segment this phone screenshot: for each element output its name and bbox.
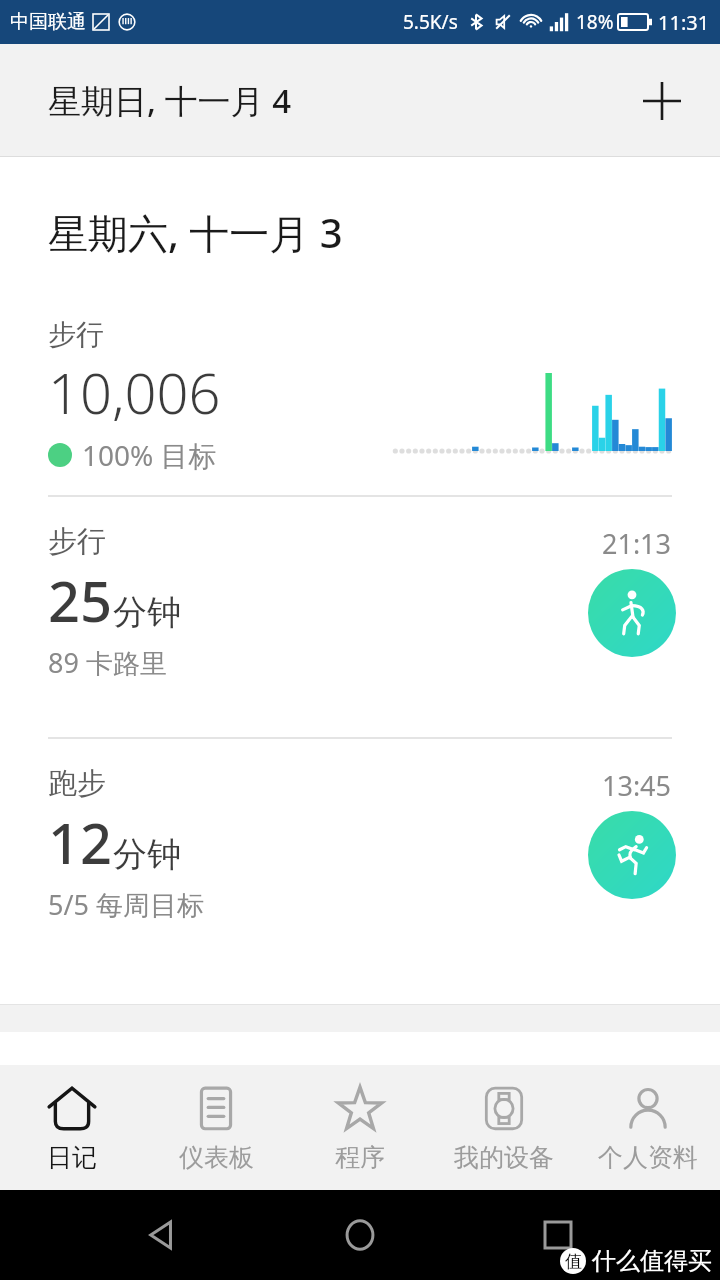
staticText: 100% 目标 [82,436,217,474]
button[interactable]: 步行 [0,307,720,495]
staticText: 10,006 [48,354,221,430]
staticText: 值 [565,1251,582,1272]
button[interactable]: Running activity [588,811,676,899]
staticText: 个人资料 [598,1142,698,1173]
staticText: 13:45 [602,767,672,804]
staticText: 我的设备 [454,1142,554,1173]
button[interactable]: Add [632,71,692,131]
staticText: 什么值得买 [592,1246,712,1276]
staticText: 步行 [48,523,106,560]
staticText: 25 [48,562,113,638]
staticText: 21:13 [602,525,672,562]
staticText: 星期六, 十一月 3 [48,205,343,260]
button[interactable]: Back [128,1200,198,1270]
staticText: 星期日, 十一月 4 [48,78,292,123]
staticText: 步行 [48,317,104,352]
staticText: 18% [576,9,614,35]
button[interactable]: 我的设备 [432,1065,576,1190]
staticText: 89 卡路里 [48,644,167,681]
button[interactable]: 跑步 [0,739,720,979]
button[interactable]: Recents [523,1200,593,1270]
staticText: 仪表板 [179,1142,254,1173]
staticText: 11:31 [658,9,710,36]
staticText: 中国联通 [10,10,86,34]
staticText: 分钟 [113,591,181,634]
staticText: 5/5 每周目标 [48,886,204,923]
staticText: 程序 [335,1142,385,1173]
button[interactable]: Home [325,1200,395,1270]
staticText: 分钟 [113,833,181,876]
staticText: 日记 [47,1142,97,1173]
button[interactable]: 步行 [0,497,720,737]
button[interactable]: 仪表板 [144,1065,288,1190]
button[interactable]: 程序 [288,1065,432,1190]
staticText: 12 [48,804,113,880]
button[interactable]: Walking activity [588,569,676,657]
button[interactable]: 个人资料 [576,1065,720,1190]
staticText: 5.5K/s [403,9,458,35]
button[interactable]: 日记 [0,1065,144,1190]
staticText: 跑步 [48,765,106,802]
